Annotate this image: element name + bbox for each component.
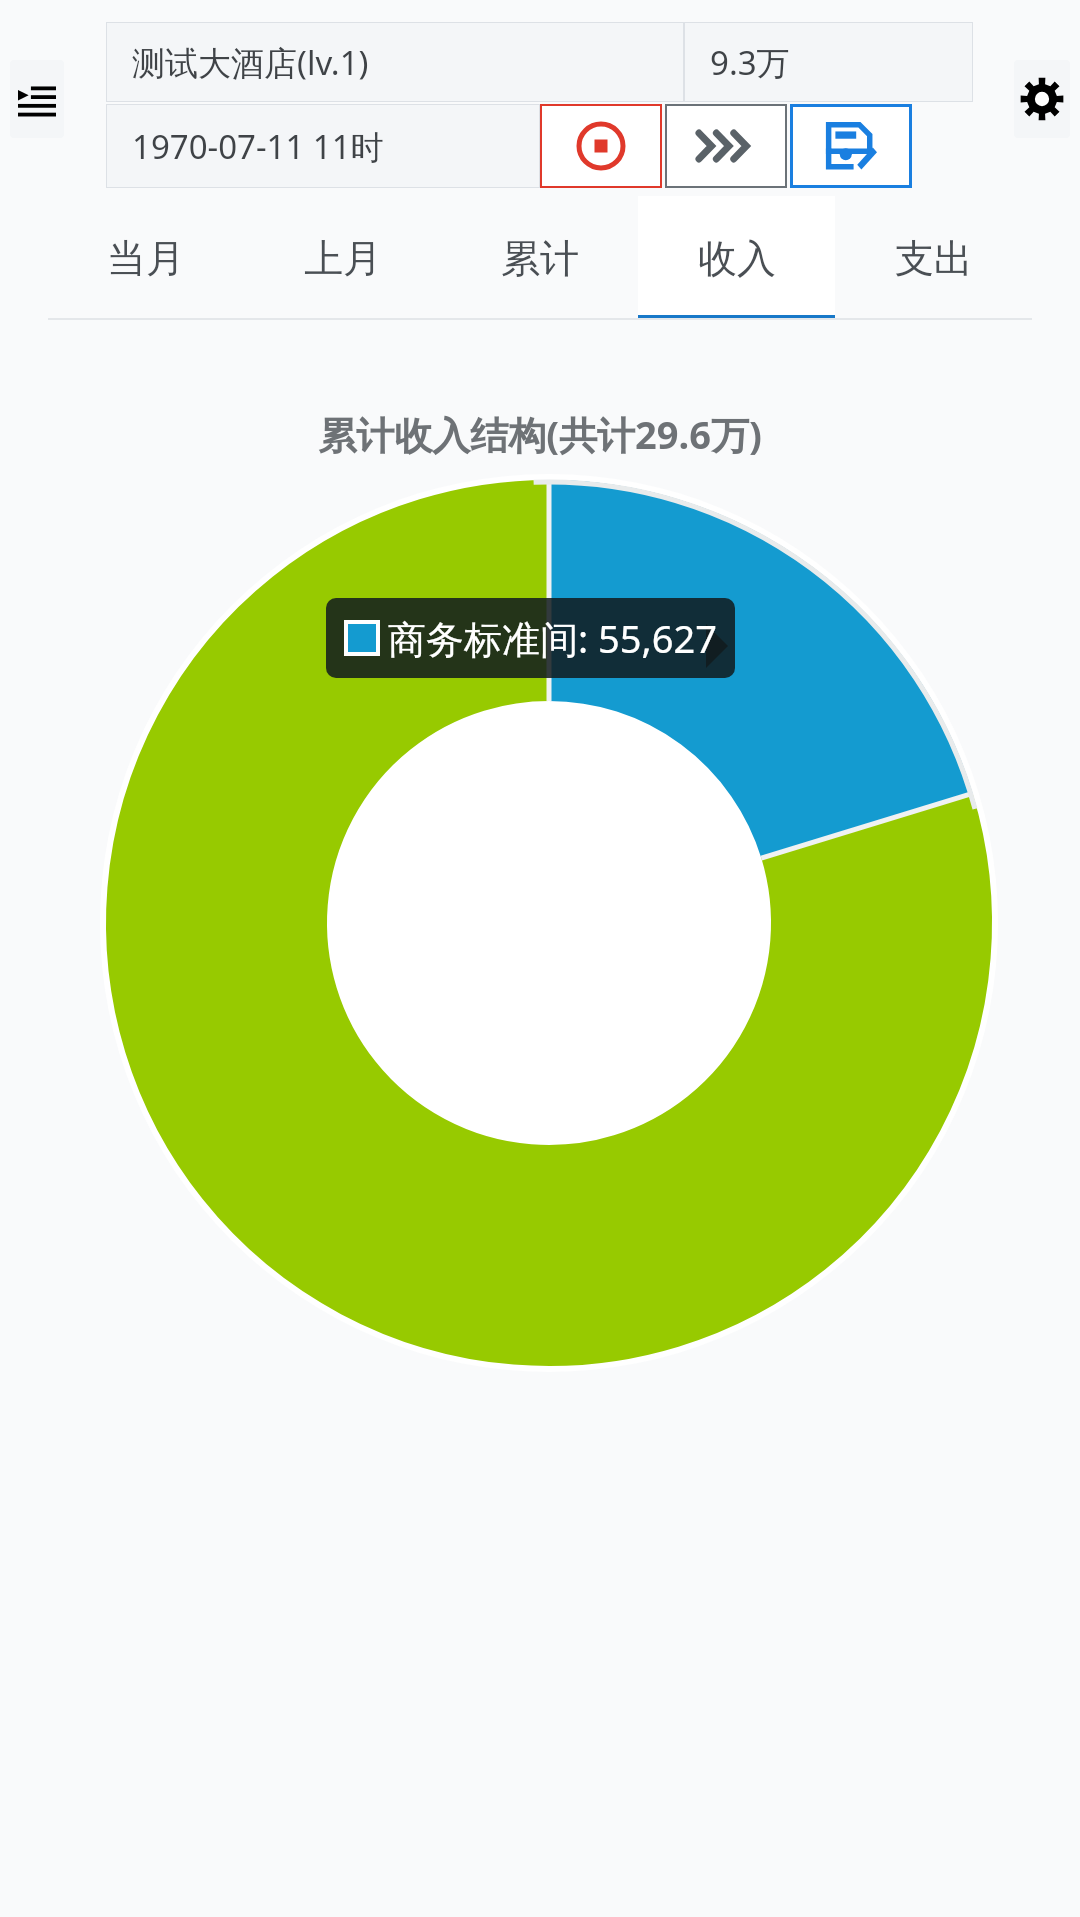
staticText: 累计 — [501, 234, 579, 283]
button[interactable]: Settings — [1014, 60, 1070, 138]
button[interactable]: Fast forward — [665, 104, 787, 188]
button[interactable]: Stop — [540, 104, 662, 188]
staticText: 测试大酒店(lv.1) — [132, 40, 369, 85]
button[interactable]: 收入 — [638, 196, 835, 320]
staticText: 上月 — [304, 234, 382, 283]
button[interactable]: 9.3万 — [684, 22, 973, 102]
staticText: 当月 — [107, 234, 185, 283]
staticText: 累计收入结构(共计29.6万) — [0, 408, 1080, 460]
button[interactable]: 累计 — [441, 196, 638, 320]
button[interactable]: 上月 — [244, 196, 441, 320]
staticText: 1970-07-11 11时 — [132, 124, 384, 169]
button[interactable]: Edit record — [790, 104, 912, 188]
staticText: 收入 — [698, 234, 776, 283]
button[interactable]: 1970-07-11 11时 — [106, 104, 540, 188]
staticText: 商务标准间: 55,627 — [388, 612, 717, 664]
button[interactable]: 支出 — [835, 196, 1032, 320]
staticText: 支出 — [895, 234, 973, 283]
button[interactable]: 当月 — [48, 196, 244, 320]
button[interactable]: Menu — [10, 60, 64, 138]
staticText: 9.3万 — [710, 40, 790, 85]
button[interactable]: 测试大酒店(lv.1) — [106, 22, 684, 102]
